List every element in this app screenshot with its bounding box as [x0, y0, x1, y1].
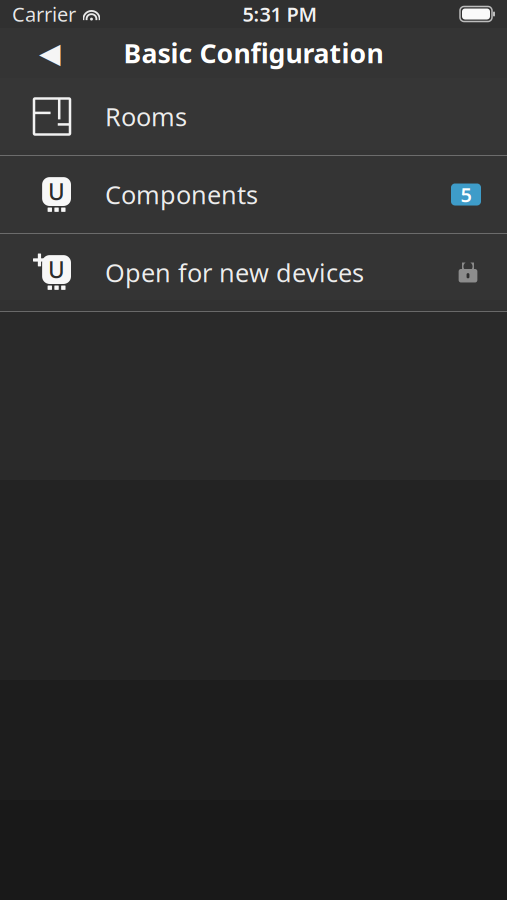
staticText: Rooms [105, 100, 187, 133]
staticText: ◀ [39, 37, 61, 69]
button[interactable]: Back [26, 30, 74, 76]
button[interactable]: U [0, 234, 507, 312]
button[interactable]: Rooms [0, 78, 507, 156]
staticText: Carrier [12, 1, 76, 27]
staticText: 5:31 PM [242, 1, 317, 27]
staticText: Open for new devices [105, 256, 364, 289]
staticText: 5 [460, 181, 471, 208]
staticText: Components [105, 178, 258, 211]
button[interactable]: U [0, 156, 507, 234]
staticText: Basic Configuration [123, 35, 383, 71]
staticText: U [48, 254, 65, 285]
staticText: U [48, 176, 65, 207]
